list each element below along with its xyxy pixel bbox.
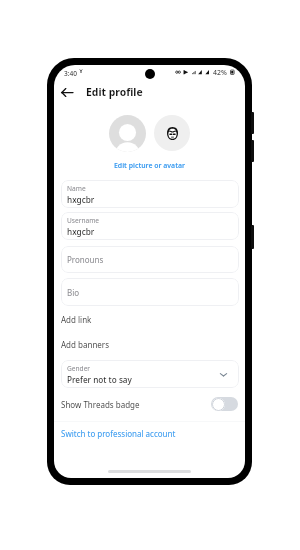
- staticText: Edit profile: [86, 85, 143, 99]
- staticText: hxgcbr: [67, 194, 95, 205]
- staticText: Edit picture or avatar: [114, 161, 185, 170]
- button[interactable]: Show Threads badge: [54, 392, 245, 416]
- staticText: Name: [67, 184, 86, 193]
- staticText: Switch to professional account: [61, 428, 176, 439]
- button[interactable]: Gender: [61, 360, 239, 388]
- staticText: Show Threads badge: [61, 399, 140, 410]
- staticText: Bio: [67, 287, 80, 298]
- staticText: 3:40: [64, 69, 78, 78]
- staticText: Pronouns: [67, 254, 104, 265]
- button[interactable]: Switch to professional account: [54, 424, 245, 442]
- staticText: Gender: [67, 364, 91, 373]
- button[interactable]: Edit picture or avatar: [54, 159, 245, 172]
- staticText: Add link: [61, 314, 92, 325]
- staticText: 42%: [213, 68, 227, 77]
- button[interactable]: Profile photo: [109, 115, 146, 152]
- staticText: Prefer not to say: [67, 374, 132, 385]
- button[interactable]: Add banners: [54, 335, 245, 353]
- staticText: Username: [67, 216, 100, 225]
- staticText: hxgcbr: [67, 226, 95, 237]
- staticText: Add banners: [61, 339, 109, 350]
- button[interactable]: Username: [61, 212, 239, 240]
- button[interactable]: Pronouns: [61, 246, 239, 273]
- button[interactable]: Add link: [54, 310, 245, 328]
- button[interactable]: Avatar: [154, 115, 190, 151]
- button[interactable]: Back: [57, 83, 76, 101]
- button[interactable]: Bio: [61, 278, 239, 306]
- button[interactable]: Name: [61, 180, 239, 208]
